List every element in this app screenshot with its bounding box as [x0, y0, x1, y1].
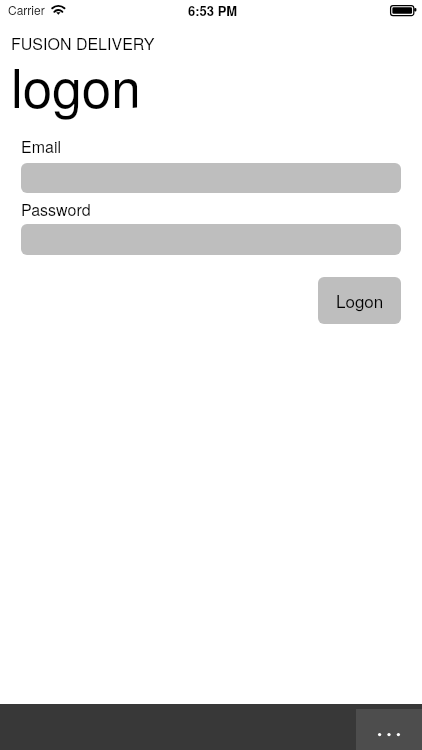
staticText: FUSION DELIVERY [11, 35, 155, 54]
staticText: Carrier [8, 4, 45, 18]
staticText: 6:53 PM [188, 4, 238, 19]
button[interactable]: Logon [318, 277, 401, 324]
button[interactable]: More options [356, 709, 422, 750]
button[interactable]: Password input [21, 224, 401, 255]
staticText: Password [21, 201, 91, 220]
staticText: logon [11, 59, 141, 120]
button[interactable]: Email input [21, 163, 401, 193]
staticText: Logon [336, 292, 384, 312]
staticText: Email [21, 138, 62, 157]
